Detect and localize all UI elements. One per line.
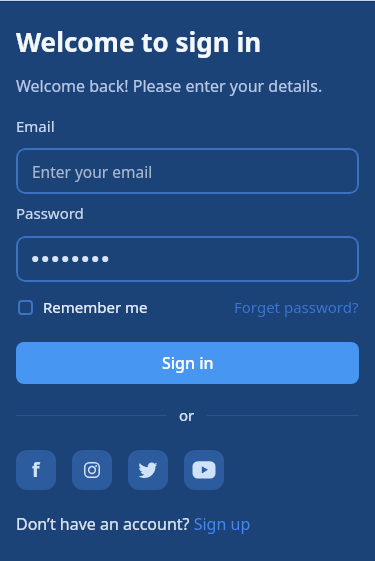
button[interactable]: Sign in xyxy=(16,342,359,384)
button[interactable]: Forget password? xyxy=(234,297,359,317)
staticText: Enter your email xyxy=(32,161,153,182)
staticText: Email xyxy=(16,116,55,136)
staticText: Welcome back! Please enter your details. xyxy=(16,75,323,97)
button[interactable] xyxy=(184,450,224,490)
button[interactable] xyxy=(128,450,168,490)
staticText: Welcome to sign in xyxy=(16,24,262,59)
button[interactable] xyxy=(72,450,112,490)
button[interactable]: Enter your email xyxy=(16,148,359,194)
button[interactable]: Don’t have an account? Sign up xyxy=(16,513,251,535)
staticText: f xyxy=(32,457,40,483)
staticText: or xyxy=(179,405,195,425)
button[interactable]: f xyxy=(16,450,56,490)
button[interactable] xyxy=(16,236,359,282)
staticText: Password xyxy=(16,203,84,223)
staticText: Remember me xyxy=(43,297,148,317)
button[interactable]: Remember me xyxy=(16,297,148,317)
staticText: Sign in xyxy=(162,352,214,374)
